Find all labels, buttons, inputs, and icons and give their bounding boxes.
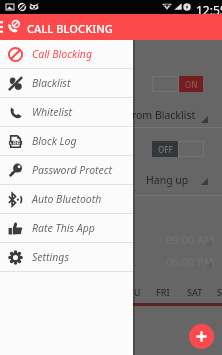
button[interactable]: Settings xyxy=(0,243,133,271)
staticText: Rate This App xyxy=(32,221,95,235)
staticText: Block Log xyxy=(32,134,77,148)
staticText: SAT xyxy=(187,286,203,298)
button[interactable]: SUN xyxy=(211,285,222,299)
staticText: Call Blocking xyxy=(32,47,93,61)
staticText: ON xyxy=(185,79,198,90)
button[interactable]: Blacklist xyxy=(0,69,133,97)
staticText: 09:00 AM xyxy=(166,232,214,247)
staticText: OFF xyxy=(158,144,173,155)
button[interactable] xyxy=(178,141,204,157)
button[interactable]: Add xyxy=(189,324,214,349)
staticText: 06:00 PM xyxy=(166,254,214,269)
button[interactable]: OFF xyxy=(152,141,178,157)
button[interactable]: THU xyxy=(115,285,147,299)
button[interactable]: Password Protect xyxy=(0,156,133,184)
staticText: Settings xyxy=(32,250,69,264)
button[interactable]: ON xyxy=(179,76,203,92)
button[interactable]: FRI xyxy=(147,285,179,299)
staticText: CALL BLOCKING xyxy=(27,21,113,36)
staticText: Hang up xyxy=(146,173,189,187)
staticText: Block from Blacklist xyxy=(99,108,196,122)
button[interactable]: Open navigation drawer xyxy=(0,20,3,34)
staticText: Auto Bluetooth xyxy=(32,192,102,206)
button[interactable]: Block Log xyxy=(0,127,133,155)
button[interactable]: Auto Bluetooth xyxy=(0,185,133,213)
button[interactable]: SAT xyxy=(179,285,211,299)
staticText: Password Protect xyxy=(32,163,113,177)
button[interactable]: Whitelist xyxy=(0,98,133,126)
staticText: 12:55 xyxy=(196,2,222,16)
button[interactable]: Rate This App xyxy=(0,214,133,242)
staticText: FRI xyxy=(156,286,170,298)
staticText: Blacklist xyxy=(32,76,71,90)
staticText: SUN xyxy=(217,286,222,298)
staticText: THU xyxy=(122,286,141,298)
staticText: Whitelist xyxy=(32,105,72,119)
button[interactable] xyxy=(152,76,179,92)
button[interactable]: Call Blocking xyxy=(0,40,133,68)
